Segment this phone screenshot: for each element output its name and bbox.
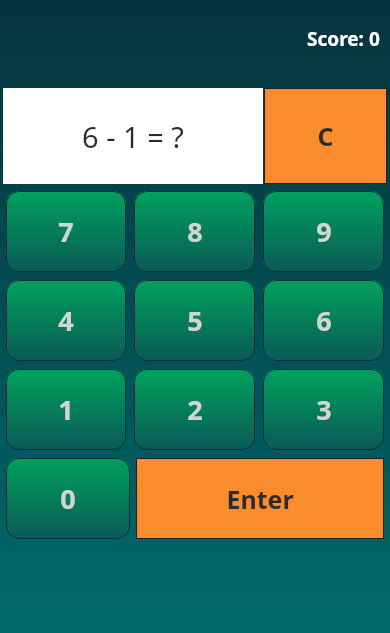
button[interactable]: 6 - 1 = ? bbox=[3, 88, 263, 184]
staticText: 3 bbox=[316, 391, 332, 428]
staticText: Enter bbox=[226, 482, 294, 516]
button[interactable]: Enter bbox=[136, 458, 384, 539]
staticText: 5 bbox=[187, 302, 203, 339]
staticText: 6 - 1 = ? bbox=[82, 117, 184, 156]
staticText: 0 bbox=[60, 480, 76, 517]
button[interactable]: 5 bbox=[134, 280, 255, 361]
button[interactable]: 9 bbox=[263, 191, 384, 272]
staticText: 9 bbox=[316, 213, 332, 250]
button[interactable]: 2 bbox=[134, 369, 255, 450]
button[interactable]: 4 bbox=[6, 280, 126, 361]
staticText: 2 bbox=[187, 391, 203, 428]
button[interactable]: C bbox=[264, 88, 387, 184]
staticText: 7 bbox=[58, 213, 74, 250]
staticText: 4 bbox=[58, 302, 74, 339]
button[interactable]: 0 bbox=[6, 458, 130, 539]
button[interactable]: 8 bbox=[134, 191, 255, 272]
staticText: C bbox=[317, 119, 334, 153]
staticText: 8 bbox=[187, 213, 203, 250]
button[interactable]: 6 bbox=[263, 280, 384, 361]
button[interactable]: 7 bbox=[6, 191, 126, 272]
staticText: 1 bbox=[58, 391, 74, 428]
button[interactable]: 3 bbox=[263, 369, 384, 450]
staticText: Score: 0 bbox=[307, 26, 380, 52]
button[interactable]: 1 bbox=[6, 369, 126, 450]
staticText: 6 bbox=[316, 302, 332, 339]
